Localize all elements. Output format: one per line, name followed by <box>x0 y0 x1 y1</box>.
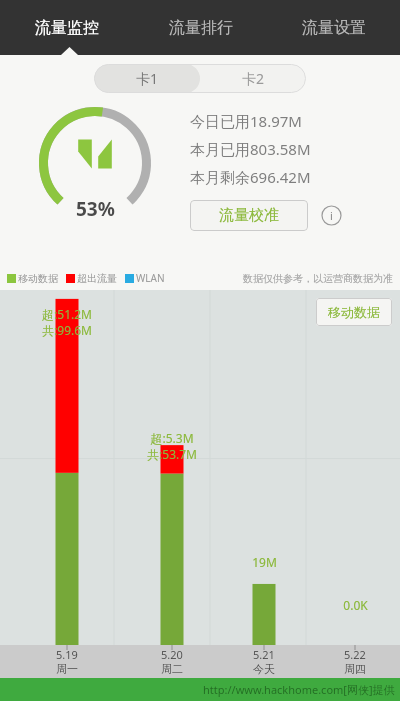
staticText: 本月剩余696.42M <box>190 167 311 187</box>
staticText: 0.0K <box>343 597 368 613</box>
staticText: 卡1 <box>136 69 159 88</box>
button[interactable]: 移动数据 <box>316 298 392 326</box>
staticText: 53% <box>76 196 115 222</box>
staticText: 5.19 <box>56 647 78 662</box>
staticText: 周四 <box>344 662 366 676</box>
staticText: 超:5.3M <box>150 430 194 446</box>
staticText: 流量校准 <box>219 206 279 225</box>
staticText: 周二 <box>161 662 183 676</box>
staticText: 数据仅供参考，以运营商数据为准 <box>243 272 393 285</box>
staticText: 5.20 <box>161 647 183 662</box>
staticText: 今日已用18.97M <box>190 111 302 131</box>
staticText: i <box>330 208 333 223</box>
staticText: 流量监控 <box>35 18 99 38</box>
button[interactable]: 卡1 <box>94 64 200 93</box>
staticText: 卡2 <box>242 69 265 88</box>
button[interactable]: 流量设置 <box>267 0 400 55</box>
staticText: 超:51.2M <box>42 306 92 322</box>
staticText: 5.22 <box>344 647 366 662</box>
staticText: 移动数据 <box>18 272 58 285</box>
staticText: 共:53.7M <box>147 446 197 462</box>
button[interactable]: 流量监控 <box>0 0 134 55</box>
button[interactable]: 流量排行 <box>134 0 267 55</box>
staticText: 周一 <box>56 662 78 676</box>
staticText: 超出流量 <box>77 272 117 285</box>
staticText: 19M <box>252 554 277 570</box>
staticText: 今天 <box>253 662 275 676</box>
staticText: WLAN <box>136 271 165 285</box>
staticText: 流量排行 <box>169 18 233 38</box>
staticText: 本月已用803.58M <box>190 139 311 159</box>
button[interactable]: 卡2 <box>200 64 306 93</box>
staticText: 流量设置 <box>302 18 366 38</box>
button[interactable]: 流量校准 <box>190 200 308 231</box>
staticText: 移动数据 <box>328 304 380 320</box>
staticText: http://www.hackhome.com[网侠]提供 <box>203 682 395 697</box>
button[interactable]: Info <box>321 205 342 226</box>
staticText: 共:99.6M <box>42 322 92 338</box>
staticText: 5.21 <box>253 647 275 662</box>
